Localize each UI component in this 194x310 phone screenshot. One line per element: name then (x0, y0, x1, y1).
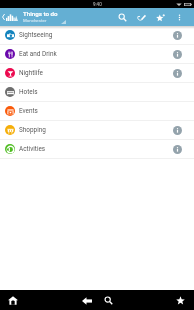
button[interactable]: More info (168, 140, 186, 158)
button[interactable]: Events (0, 102, 194, 120)
button[interactable]: Eat and Drink (0, 45, 194, 63)
button[interactable]: Search (100, 292, 117, 309)
button[interactable]: More info (168, 64, 186, 82)
button[interactable]: Hotels (0, 83, 194, 101)
button[interactable]: More info (168, 45, 186, 63)
button[interactable]: Add to favourites (151, 8, 170, 26)
staticText: Shopping (19, 126, 46, 134)
staticText: 9:40 (93, 2, 102, 7)
button[interactable]: Home (4, 292, 21, 309)
button[interactable]: Navigate up (0, 8, 6, 26)
staticText: Events (19, 107, 38, 115)
button[interactable]: Edit (132, 8, 151, 26)
button[interactable]: Shopping (0, 121, 194, 139)
button[interactable]: More options (170, 8, 189, 26)
staticText: Sightseeing (19, 31, 53, 39)
button[interactable]: More info (168, 121, 186, 139)
button[interactable]: More info (168, 26, 186, 44)
staticText: Manchester (23, 18, 47, 23)
staticText: Eat and Drink (19, 50, 57, 58)
button[interactable]: Activities (0, 140, 194, 158)
button[interactable]: Back (78, 292, 95, 309)
staticText: Hotels (19, 88, 38, 96)
button[interactable]: Nightlife (0, 64, 194, 82)
staticText: Activities (19, 145, 46, 153)
button[interactable]: Favourites (172, 292, 189, 309)
button[interactable]: Sightseeing (0, 26, 194, 44)
button[interactable]: Search (113, 8, 132, 26)
staticText: Nightlife (19, 69, 43, 77)
staticText: Things to do (23, 10, 58, 17)
